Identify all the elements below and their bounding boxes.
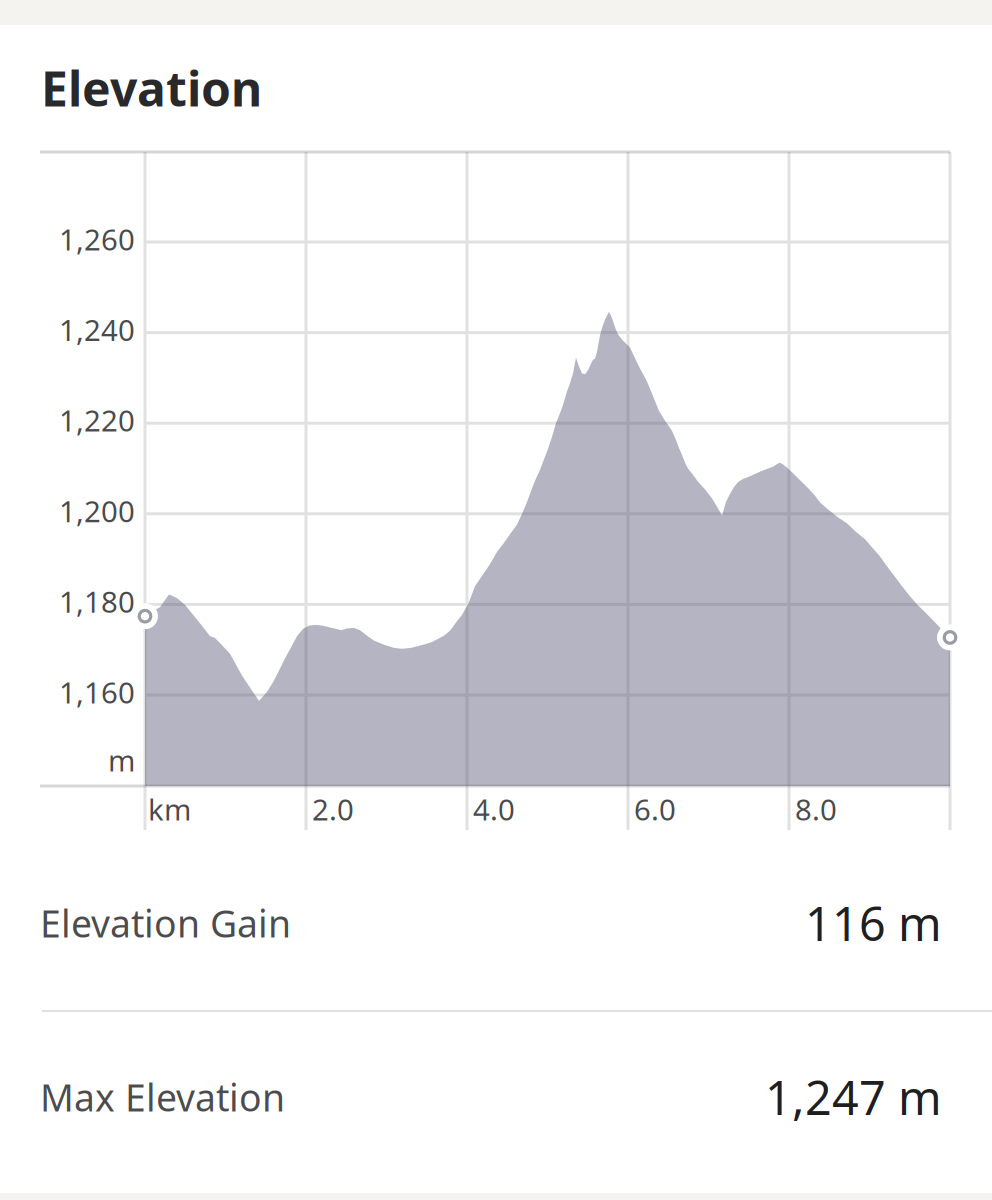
staticText: 1,247 m bbox=[765, 1066, 942, 1128]
staticText: 1,180 bbox=[59, 582, 135, 621]
button[interactable]: Elevation Gain bbox=[0, 845, 992, 1001]
staticText: 8.0 bbox=[795, 789, 837, 828]
staticText: Max Elevation bbox=[40, 1072, 285, 1122]
staticText: 1,240 bbox=[59, 310, 135, 349]
staticText: km bbox=[148, 789, 191, 828]
staticText: 2.0 bbox=[312, 789, 354, 828]
staticText: 1,160 bbox=[59, 672, 135, 711]
staticText: 116 m bbox=[805, 892, 942, 954]
staticText: 6.0 bbox=[634, 789, 676, 828]
staticText: m bbox=[108, 740, 135, 779]
staticText: 1,220 bbox=[59, 401, 135, 440]
staticText: 1,200 bbox=[59, 491, 135, 530]
button[interactable]: Max Elevation bbox=[0, 1019, 992, 1175]
staticText: 1,260 bbox=[59, 219, 135, 258]
staticText: Elevation bbox=[41, 56, 262, 120]
staticText: Elevation Gain bbox=[40, 898, 291, 948]
staticText: 4.0 bbox=[473, 789, 515, 828]
